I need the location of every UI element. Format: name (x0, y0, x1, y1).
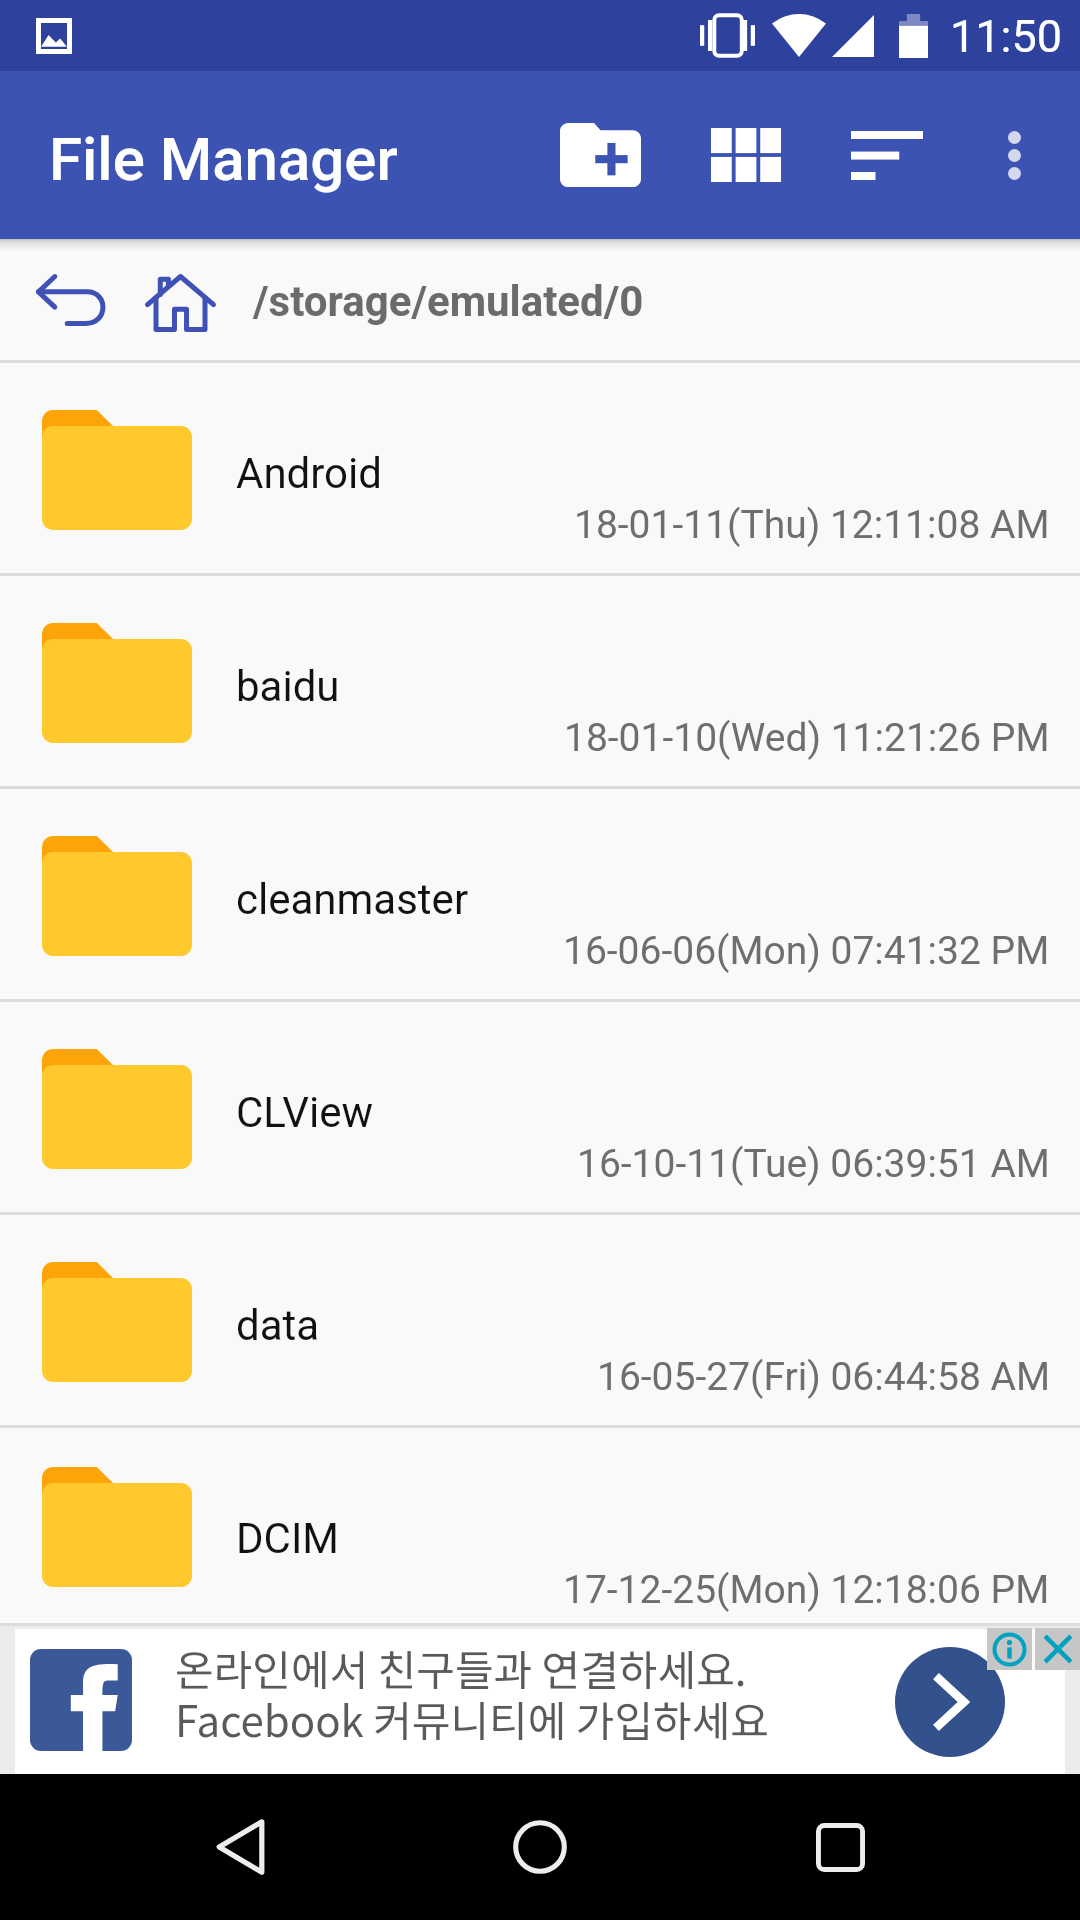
staticText: 18-01-10(Wed) 11:21:26 PM (564, 715, 1050, 761)
button[interactable]: New folder (540, 71, 660, 239)
staticText: 11:50 (950, 10, 1063, 63)
button[interactable]: Android (0, 363, 1080, 576)
button[interactable]: Recents (760, 1774, 920, 1920)
button[interactable]: Sort (827, 71, 947, 239)
button[interactable]: More options (959, 71, 1069, 239)
button[interactable]: Back (160, 1774, 320, 1920)
staticText: data (236, 1301, 320, 1350)
staticText: 16-06-06(Mon) 07:41:32 PM (563, 928, 1050, 974)
staticText: 18-01-11(Thu) 12:11:08 AM (574, 502, 1050, 548)
staticText: cleanmaster (236, 875, 469, 924)
button[interactable]: Home (127, 239, 234, 363)
staticText: 16-10-11(Tue) 06:39:51 AM (577, 1141, 1050, 1187)
button[interactable]: CLView (0, 1002, 1080, 1215)
button[interactable]: 온라인에서 친구들과 연결하세요. Facebook 커뮤니티에 가입하세요 (0, 1626, 1080, 1774)
staticText: 온라인에서 친구들과 연결하세요. Facebook 커뮤니티에 가입하세요 (175, 1637, 769, 1749)
button[interactable]: Open ad (895, 1647, 1005, 1757)
button[interactable]: Ad info (987, 1628, 1032, 1670)
staticText: File Manager (49, 124, 398, 194)
button[interactable]: Grid view (686, 71, 806, 239)
button[interactable]: Home (460, 1774, 620, 1920)
staticText: /storage/emulated/0 (253, 277, 644, 326)
button[interactable]: Back (16, 239, 127, 363)
staticText: Android (236, 449, 382, 498)
staticText: 17-12-25(Mon) 12:18:06 PM (563, 1567, 1050, 1613)
staticText: baidu (236, 662, 340, 711)
button[interactable]: baidu (0, 576, 1080, 789)
button[interactable]: cleanmaster (0, 789, 1080, 1002)
button[interactable]: DCIM (0, 1428, 1080, 1626)
staticText: CLView (236, 1088, 374, 1137)
staticText: DCIM (236, 1514, 339, 1563)
button[interactable]: data (0, 1215, 1080, 1428)
button[interactable]: Close ad (1035, 1628, 1080, 1670)
staticText: 16-05-27(Fri) 06:44:58 AM (597, 1354, 1050, 1400)
